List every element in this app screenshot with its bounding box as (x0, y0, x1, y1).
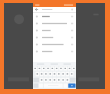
button[interactable]: List item (33, 20, 76, 27)
button[interactable]: List item (33, 27, 76, 34)
button[interactable]: Keys (33, 66, 76, 71)
button[interactable]: List item (33, 34, 76, 41)
button[interactable]: List item (33, 41, 76, 48)
button[interactable]: Keys (33, 71, 76, 77)
button[interactable]: Screenshot preview (33, 3, 76, 89)
button[interactable]: List item (33, 13, 76, 20)
button[interactable]: Space and enter (33, 83, 76, 89)
button[interactable]: List item (33, 48, 76, 55)
button[interactable]: Suggestions (33, 62, 76, 66)
button[interactable]: Keys (33, 77, 76, 83)
button[interactable]: Search (33, 7, 76, 12)
